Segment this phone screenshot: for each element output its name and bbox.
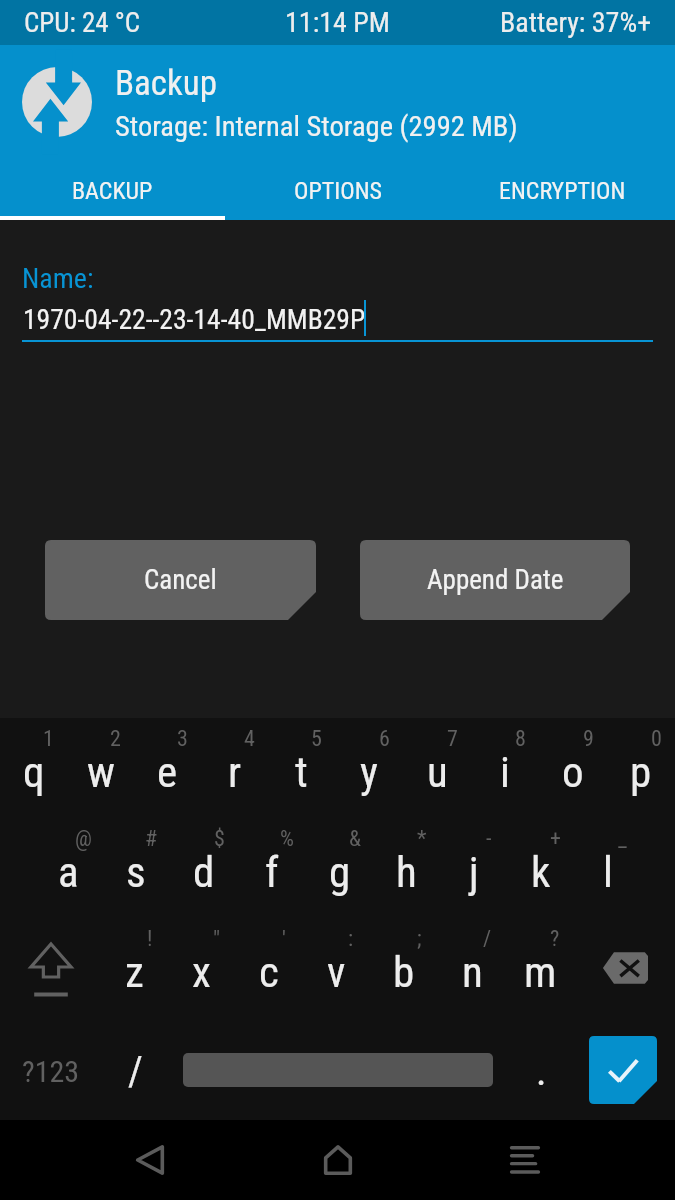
- staticText: q: [23, 747, 45, 797]
- button[interactable]: %: [238, 818, 306, 918]
- staticText: 1970-04-22--23-14-40_MMB29P: [23, 303, 366, 335]
- staticText: t: [295, 747, 308, 797]
- button[interactable]: Append Date: [360, 540, 630, 620]
- staticText: :: [348, 926, 354, 952]
- button[interactable]: 9: [539, 718, 607, 818]
- button[interactable]: :: [302, 918, 370, 1018]
- staticText: b: [393, 947, 415, 997]
- staticText: 1: [43, 726, 54, 752]
- staticText: +: [550, 826, 561, 852]
- staticText: 3: [177, 726, 188, 752]
- staticText: 2: [110, 726, 121, 752]
- button[interactable]: Space: [169, 1018, 507, 1120]
- staticText: #: [145, 826, 158, 852]
- button[interactable]: Backspace: [574, 918, 675, 1018]
- button[interactable]: Back: [110, 1120, 190, 1200]
- staticText: y: [360, 747, 378, 797]
- staticText: i: [500, 747, 510, 797]
- staticText: f: [265, 847, 279, 897]
- staticText: Battery: 37%+: [500, 6, 652, 39]
- staticText: h: [396, 847, 417, 897]
- staticText: r: [228, 747, 242, 797]
- button[interactable]: -: [440, 818, 507, 918]
- staticText: 4: [244, 726, 255, 752]
- staticText: OPTIONS: [294, 177, 382, 205]
- button[interactable]: 6: [335, 718, 403, 818]
- staticText: $: [214, 826, 225, 852]
- staticText: g: [329, 847, 351, 897]
- staticText: .: [536, 1048, 547, 1095]
- staticText: 11:14 PM: [285, 6, 390, 39]
- staticText: /: [483, 926, 492, 952]
- staticText: 5: [311, 726, 322, 752]
- button[interactable]: $: [170, 818, 238, 918]
- button[interactable]: 2: [67, 718, 134, 818]
- staticText: m: [524, 947, 557, 997]
- staticText: ;: [417, 926, 422, 952]
- staticText: d: [193, 847, 215, 897]
- staticText: /: [128, 1048, 143, 1095]
- staticText: o: [562, 747, 584, 797]
- button[interactable]: 1: [0, 718, 67, 818]
- button[interactable]: #: [102, 818, 170, 918]
- button[interactable]: +: [507, 818, 574, 918]
- staticText: ENCRYPTION: [499, 177, 626, 205]
- staticText: ?: [550, 926, 560, 952]
- button[interactable]: Cancel: [45, 540, 316, 620]
- staticText: k: [531, 847, 551, 897]
- button[interactable]: OPTIONS: [225, 167, 450, 220]
- staticText: w: [87, 747, 115, 797]
- staticText: l: [603, 847, 613, 897]
- button[interactable]: ?: [506, 918, 574, 1018]
- staticText: s: [126, 847, 146, 897]
- button[interactable]: Recent apps: [485, 1120, 565, 1200]
- staticText: z: [125, 947, 144, 997]
- button[interactable]: 0: [607, 718, 675, 818]
- button[interactable]: ENCRYPTION: [450, 167, 675, 220]
- staticText: -: [486, 826, 492, 852]
- button[interactable]: @: [34, 818, 102, 918]
- button[interactable]: 7: [403, 718, 471, 818]
- staticText: u: [427, 747, 448, 797]
- button[interactable]: 3: [134, 718, 201, 818]
- staticText: v: [327, 947, 346, 997]
- button[interactable]: Shift: [0, 918, 101, 1018]
- staticText: Cancel: [144, 564, 217, 596]
- button[interactable]: *: [373, 818, 440, 918]
- button[interactable]: ;: [370, 918, 438, 1018]
- staticText: _: [618, 826, 627, 852]
- button[interactable]: Enter: [589, 1036, 657, 1104]
- button[interactable]: _: [574, 818, 641, 918]
- staticText: 7: [447, 726, 458, 752]
- button[interactable]: ?123: [0, 1018, 101, 1120]
- button[interactable]: /: [101, 1018, 169, 1120]
- button[interactable]: .: [507, 1018, 575, 1120]
- staticText: ': [282, 926, 286, 952]
- staticText: Append Date: [427, 564, 564, 596]
- button[interactable]: 5: [268, 718, 335, 818]
- staticText: *: [417, 826, 427, 852]
- staticText: 6: [379, 726, 390, 752]
- button[interactable]: &: [306, 818, 373, 918]
- staticText: Storage: Internal Storage (2992 MB): [115, 110, 518, 143]
- staticText: &: [349, 826, 361, 852]
- button[interactable]: /: [438, 918, 506, 1018]
- staticText: a: [58, 847, 79, 897]
- staticText: j: [469, 847, 479, 897]
- staticText: e: [157, 747, 178, 797]
- staticText: ": [213, 926, 221, 952]
- button[interactable]: ': [235, 918, 302, 1018]
- staticText: p: [630, 747, 652, 797]
- staticText: n: [462, 947, 483, 997]
- staticText: 0: [651, 726, 662, 752]
- staticText: x: [192, 947, 211, 997]
- button[interactable]: 4: [201, 718, 268, 818]
- button[interactable]: BACKUP: [0, 167, 225, 220]
- button[interactable]: ": [168, 918, 235, 1018]
- staticText: Backup: [115, 63, 217, 104]
- button[interactable]: Home: [298, 1120, 378, 1200]
- staticText: @: [75, 826, 92, 852]
- button[interactable]: !: [101, 918, 168, 1018]
- staticText: 8: [515, 726, 526, 752]
- button[interactable]: 8: [471, 718, 539, 818]
